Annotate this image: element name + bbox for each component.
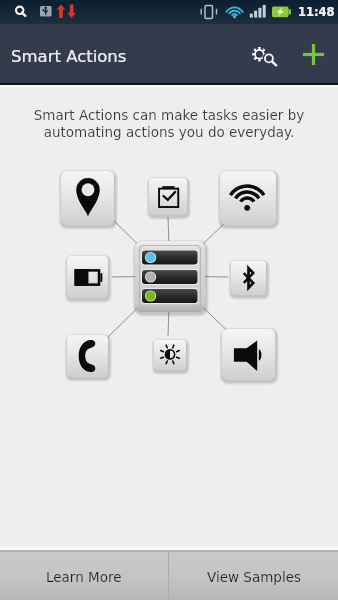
button[interactable] bbox=[61, 171, 114, 225]
button[interactable] bbox=[231, 261, 266, 295]
staticText: 11:48 bbox=[298, 5, 335, 18]
button[interactable] bbox=[220, 171, 276, 225]
button[interactable] bbox=[135, 241, 205, 312]
staticText: View Samples bbox=[207, 569, 301, 585]
button[interactable]: View Samples bbox=[169, 552, 338, 600]
button[interactable] bbox=[67, 256, 108, 298]
button[interactable] bbox=[149, 178, 187, 215]
button[interactable] bbox=[154, 340, 186, 370]
staticText: Smart Actions bbox=[11, 47, 127, 66]
button[interactable] bbox=[67, 335, 108, 377]
staticText: Learn More bbox=[46, 569, 122, 585]
staticText: Smart Actions can make tasks easier by a… bbox=[0, 107, 338, 140]
button[interactable] bbox=[222, 329, 275, 380]
button[interactable]: Add action bbox=[288, 24, 338, 83]
button[interactable]: Learn More bbox=[0, 552, 168, 600]
button[interactable]: Search settings bbox=[232, 24, 288, 83]
button[interactable]: Smart Actions bbox=[0, 24, 232, 83]
